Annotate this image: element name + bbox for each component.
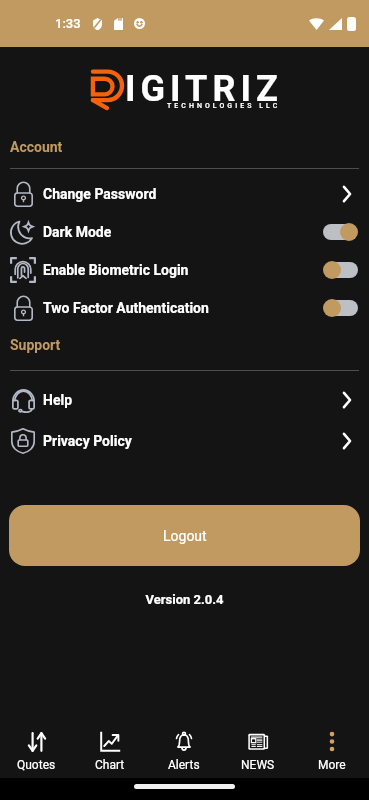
other: News <box>247 731 269 753</box>
other: Open Help <box>340 391 358 409</box>
button[interactable]: News <box>221 722 295 778</box>
other: Quotes <box>26 731 48 753</box>
staticText: 1:33 <box>55 16 81 31</box>
other: More <box>321 731 343 753</box>
staticText: Help <box>43 392 73 408</box>
other: Alerts <box>173 731 195 753</box>
button[interactable]: Alerts <box>147 722 221 778</box>
staticText: Quotes <box>17 758 56 772</box>
staticText: NEWS <box>241 758 275 772</box>
staticText: Logout <box>163 528 207 544</box>
other: Open Privacy Policy <box>340 432 358 450</box>
staticText: TECHNOLOGIES LLC <box>167 102 281 110</box>
button[interactable]: Enable Biometric Login <box>0 251 369 289</box>
staticText: Two Factor Authentication <box>43 300 209 316</box>
button[interactable]: Logout <box>9 505 360 566</box>
button[interactable]: Toggle Two Factor Authentication <box>323 299 358 317</box>
button[interactable]: Change Password <box>0 175 369 213</box>
button[interactable]: More <box>295 722 369 778</box>
staticText: IGITRIZ <box>125 68 283 110</box>
staticText: Version 2.0.4 <box>0 592 369 607</box>
button[interactable]: Chart <box>73 722 147 778</box>
button[interactable]: Dark Mode <box>0 213 369 251</box>
staticText: Enable Biometric Login <box>43 262 189 278</box>
button[interactable]: Toggle Dark Mode <box>323 223 358 241</box>
button[interactable]: Help <box>0 381 369 419</box>
button[interactable]: Privacy Policy <box>0 422 369 460</box>
staticText: Dark Mode <box>43 224 112 240</box>
other: Open Change Password <box>340 185 358 203</box>
other: Chart <box>99 731 121 753</box>
staticText: Alerts <box>168 758 200 772</box>
staticText: More <box>318 758 346 772</box>
staticText: Support <box>10 337 61 353</box>
staticText: Privacy Policy <box>43 433 132 449</box>
button[interactable]: Two Factor Authentication <box>0 289 369 327</box>
staticText: Chart <box>95 758 125 772</box>
staticText: Change Password <box>43 186 157 202</box>
button[interactable]: Toggle Enable Biometric Login <box>323 261 358 279</box>
staticText: Account <box>10 139 63 155</box>
button[interactable]: Quotes <box>0 722 73 778</box>
